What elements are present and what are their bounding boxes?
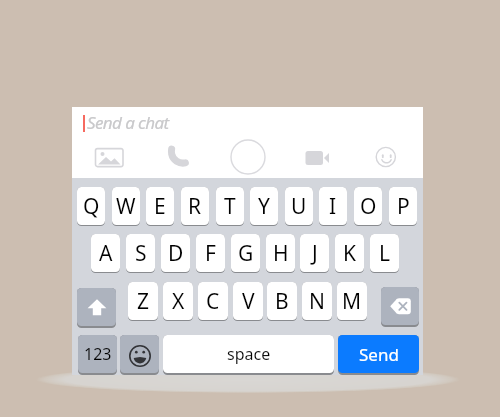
staticText: W bbox=[116, 192, 136, 221]
staticText: 123 bbox=[84, 343, 112, 365]
button[interactable]: T bbox=[216, 187, 244, 225]
button[interactable]: P bbox=[389, 187, 417, 225]
button[interactable]: M bbox=[337, 282, 367, 320]
button[interactable]: K bbox=[335, 234, 364, 272]
button[interactable]: Y bbox=[250, 187, 278, 225]
button[interactable]: S bbox=[126, 234, 155, 272]
staticText: I bbox=[329, 192, 337, 221]
button[interactable]: O bbox=[354, 187, 382, 225]
staticText: J bbox=[312, 239, 318, 268]
button[interactable] bbox=[92, 144, 126, 170]
button[interactable]: D bbox=[161, 234, 190, 272]
staticText: F bbox=[205, 239, 216, 268]
button[interactable]: B bbox=[267, 282, 297, 320]
button[interactable]: X bbox=[163, 282, 193, 320]
staticText: P bbox=[397, 192, 410, 221]
button[interactable]: L bbox=[370, 234, 399, 272]
staticText: Send bbox=[359, 343, 399, 366]
button[interactable]: G bbox=[231, 234, 260, 272]
button[interactable]: I bbox=[319, 187, 347, 225]
staticText: E bbox=[154, 192, 166, 221]
button[interactable] bbox=[303, 146, 333, 168]
button[interactable]: N bbox=[302, 282, 332, 320]
staticText: S bbox=[135, 239, 147, 268]
button[interactable]: A bbox=[91, 234, 120, 272]
button[interactable]: U bbox=[285, 187, 313, 225]
staticText: G bbox=[238, 239, 254, 268]
button[interactable]: V bbox=[233, 282, 263, 320]
staticText: Send a chat bbox=[87, 111, 169, 134]
button[interactable] bbox=[77, 288, 116, 326]
staticText: Y bbox=[258, 192, 270, 221]
staticText: B bbox=[275, 287, 289, 316]
staticText: K bbox=[343, 239, 356, 268]
button[interactable]: E bbox=[146, 187, 174, 225]
button[interactable]: C bbox=[198, 282, 228, 320]
staticText: X bbox=[172, 287, 185, 316]
staticText: M bbox=[342, 287, 362, 316]
button[interactable]: F bbox=[196, 234, 225, 272]
button[interactable]: Z bbox=[128, 282, 158, 320]
button[interactable]: Send bbox=[338, 335, 419, 373]
button[interactable] bbox=[120, 335, 159, 373]
staticText: Q bbox=[83, 192, 100, 221]
button[interactable] bbox=[381, 287, 419, 325]
staticText: T bbox=[224, 192, 236, 221]
button[interactable]: space bbox=[163, 335, 334, 373]
staticText: C bbox=[206, 287, 220, 316]
button[interactable] bbox=[230, 139, 266, 175]
button[interactable] bbox=[166, 144, 192, 170]
staticText: H bbox=[273, 239, 289, 268]
button[interactable]: J bbox=[300, 234, 329, 272]
button[interactable]: R bbox=[181, 187, 209, 225]
staticText: V bbox=[242, 287, 255, 316]
button[interactable] bbox=[376, 146, 398, 168]
staticText: N bbox=[309, 287, 325, 316]
button[interactable]: H bbox=[266, 234, 295, 272]
staticText: L bbox=[379, 239, 391, 268]
staticText: A bbox=[99, 239, 113, 268]
staticText: space bbox=[227, 343, 271, 365]
staticText: R bbox=[188, 192, 202, 221]
staticText: O bbox=[360, 192, 377, 221]
button[interactable]: Q bbox=[77, 187, 105, 225]
button[interactable]: W bbox=[112, 187, 140, 225]
staticText: Z bbox=[137, 287, 150, 316]
button[interactable]: 123 bbox=[78, 335, 117, 373]
staticText: U bbox=[291, 192, 307, 221]
staticText: D bbox=[168, 239, 184, 268]
